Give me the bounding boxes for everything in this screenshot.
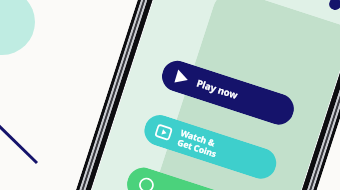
button[interactable]: Play now [158, 57, 298, 129]
staticText: Play now [195, 76, 240, 102]
button[interactable]: Watch & Get Coins [140, 111, 280, 183]
button[interactable]: Invite friends [123, 163, 263, 190]
staticText: Watch & Get Coins [176, 127, 222, 159]
